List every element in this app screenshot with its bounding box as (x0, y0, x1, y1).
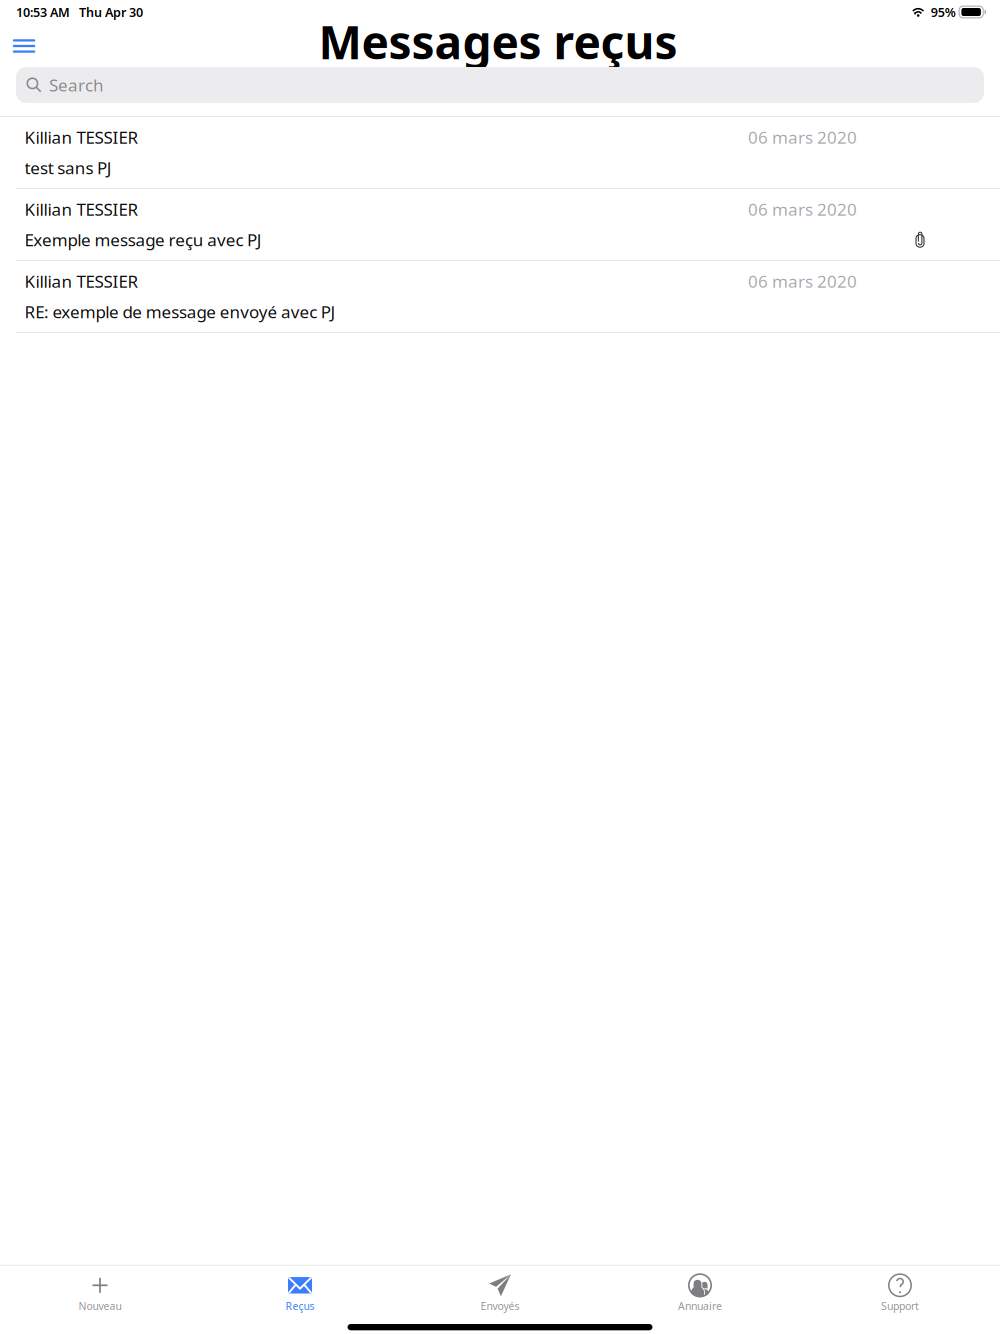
staticText: 06 mars 2020 (748, 269, 857, 293)
button[interactable]: Search (16, 67, 984, 103)
staticText: 10:53 AM (16, 3, 70, 21)
staticText: Nouveau (78, 1299, 121, 1313)
staticText: Annuaire (678, 1299, 722, 1313)
button[interactable]: Envoyés (400, 1266, 600, 1320)
button[interactable]: Menu (0, 26, 49, 61)
staticText: Exemple message reçu avec PJ (24, 228, 262, 251)
button[interactable]: Support (800, 1266, 1000, 1320)
staticText: 06 mars 2020 (748, 125, 857, 149)
button[interactable]: Killian TESSIER (0, 189, 1000, 260)
staticText: 95% (931, 3, 956, 21)
staticText: Envoyés (480, 1299, 519, 1313)
staticText: Support (881, 1299, 919, 1313)
staticText: Messages reçus (318, 10, 677, 73)
button[interactable]: Killian TESSIER (0, 117, 1000, 188)
staticText: Killian TESSIER (24, 269, 138, 293)
staticText: test sans PJ (24, 156, 112, 179)
staticText: Search (49, 73, 104, 97)
staticText: Killian TESSIER (24, 125, 138, 149)
staticText: 06 mars 2020 (748, 197, 857, 221)
button[interactable]: Reçus (200, 1266, 400, 1320)
button[interactable]: Killian TESSIER (0, 261, 1000, 332)
staticText: Reçus (285, 1299, 314, 1313)
button[interactable]: Annuaire (600, 1266, 800, 1320)
button[interactable]: Nouveau (0, 1266, 200, 1320)
staticText: Killian TESSIER (24, 197, 138, 221)
staticText: RE: exemple de message envoyé avec PJ (24, 300, 335, 323)
staticText: Thu Apr 30 (70, 3, 143, 21)
